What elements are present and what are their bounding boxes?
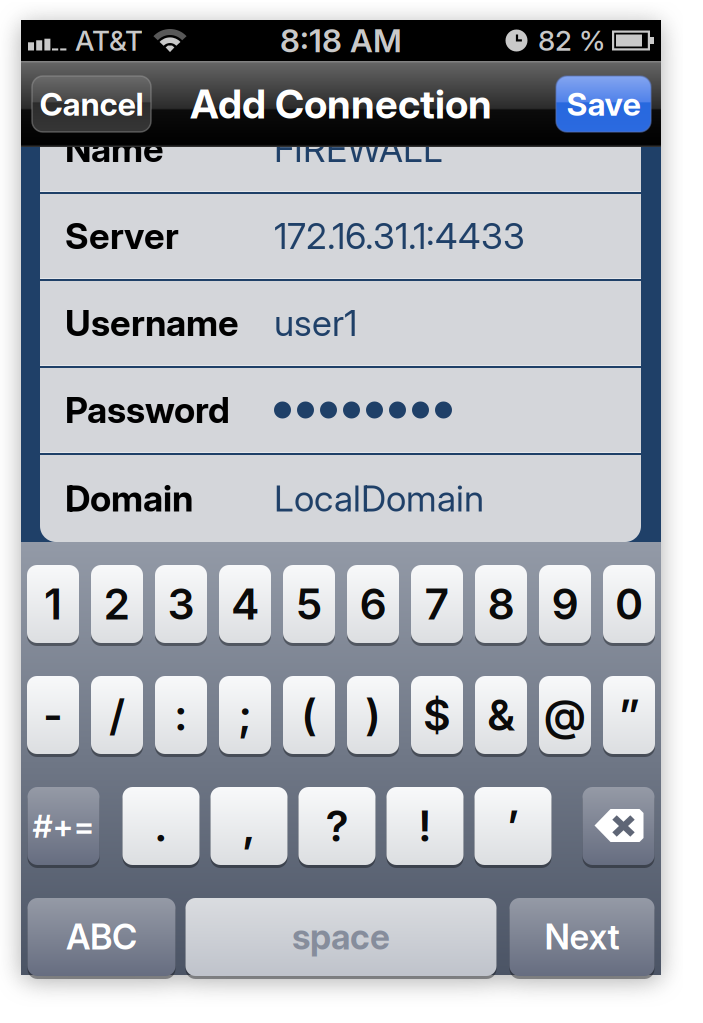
staticText: #+= — [32, 807, 94, 845]
staticText: : — [174, 689, 188, 741]
button[interactable]: Domain — [40, 455, 641, 542]
staticText: 5 — [295, 578, 322, 630]
staticText: 6 — [359, 578, 386, 630]
staticText: , — [242, 800, 256, 852]
staticText: ; — [238, 689, 252, 741]
staticText: ) — [365, 689, 381, 741]
staticText: Name — [65, 127, 164, 171]
button[interactable]: / — [91, 676, 143, 757]
staticText: Save — [566, 85, 640, 123]
button[interactable]: space — [185, 898, 496, 979]
button[interactable]: #+= — [27, 787, 99, 868]
staticText: 4 — [231, 578, 259, 630]
button[interactable]: 4 — [219, 565, 271, 646]
button[interactable]: ) — [347, 676, 399, 757]
button[interactable]: 8 — [475, 565, 527, 646]
button[interactable]: Next — [509, 898, 654, 979]
button[interactable]: 3 — [155, 565, 207, 646]
staticText: Add Connection — [190, 80, 492, 128]
button[interactable]: 7 — [411, 565, 463, 646]
staticText: Next — [544, 916, 619, 958]
staticText: 3 — [167, 578, 194, 630]
button[interactable]: Password — [40, 368, 641, 452]
button[interactable]: Delete — [582, 787, 654, 868]
staticText: / — [109, 689, 125, 741]
staticText: 7 — [424, 578, 449, 630]
button[interactable]: ( — [283, 676, 335, 757]
button[interactable]: , — [210, 787, 287, 868]
staticText: ( — [301, 689, 317, 741]
button[interactable]: 5 — [283, 565, 335, 646]
staticText: Password — [65, 388, 230, 432]
staticText: user1 — [274, 301, 357, 345]
staticText: 1 — [44, 578, 62, 630]
button[interactable]: ” — [603, 676, 655, 757]
button[interactable]: Name — [40, 107, 641, 191]
staticText: @ — [543, 689, 586, 741]
staticText: 0 — [615, 578, 643, 630]
button[interactable]: ? — [298, 787, 375, 868]
button[interactable]: 1 — [27, 565, 79, 646]
staticText: ” — [618, 689, 639, 741]
staticText: FIREWALL — [274, 127, 443, 171]
staticText: space — [292, 916, 390, 958]
staticText: ? — [325, 800, 348, 852]
button[interactable]: ’ — [474, 787, 551, 868]
staticText: $ — [423, 689, 451, 741]
button[interactable]: Server — [40, 194, 641, 278]
button[interactable]: ; — [219, 676, 271, 757]
button[interactable]: Username — [40, 281, 641, 365]
staticText: LocalDomain — [274, 477, 484, 520]
staticText: 82 % — [538, 24, 606, 57]
button[interactable]: $ — [411, 676, 463, 757]
button[interactable]: . — [122, 787, 199, 868]
staticText: ’ — [506, 800, 519, 852]
staticText: Server — [65, 214, 179, 258]
button[interactable]: - — [27, 676, 79, 757]
button[interactable]: : — [155, 676, 207, 757]
button[interactable]: ! — [386, 787, 463, 868]
button[interactable]: 9 — [539, 565, 591, 646]
button[interactable]: & — [475, 676, 527, 757]
staticText: AT&T — [75, 24, 143, 57]
staticText: 8 — [487, 578, 514, 630]
staticText: - — [43, 689, 63, 741]
button[interactable]: 2 — [91, 565, 143, 646]
staticText: ! — [418, 800, 432, 852]
button[interactable]: 6 — [347, 565, 399, 646]
staticText: . — [154, 800, 168, 852]
button[interactable]: @ — [539, 676, 591, 757]
button[interactable]: 0 — [603, 565, 655, 646]
staticText: 8:18 AM — [280, 21, 402, 60]
staticText: Username — [65, 301, 239, 345]
staticText: & — [487, 689, 515, 741]
button[interactable]: Cancel — [32, 76, 151, 132]
staticText: 172.16.31.1:4433 — [274, 214, 525, 258]
staticText: Domain — [65, 477, 193, 520]
button[interactable]: ABC — [27, 898, 175, 979]
staticText: 9 — [551, 578, 578, 630]
button[interactable]: Save — [556, 76, 651, 132]
staticText: 2 — [103, 578, 130, 630]
staticText: Cancel — [39, 85, 143, 123]
staticText: ABC — [66, 916, 137, 958]
